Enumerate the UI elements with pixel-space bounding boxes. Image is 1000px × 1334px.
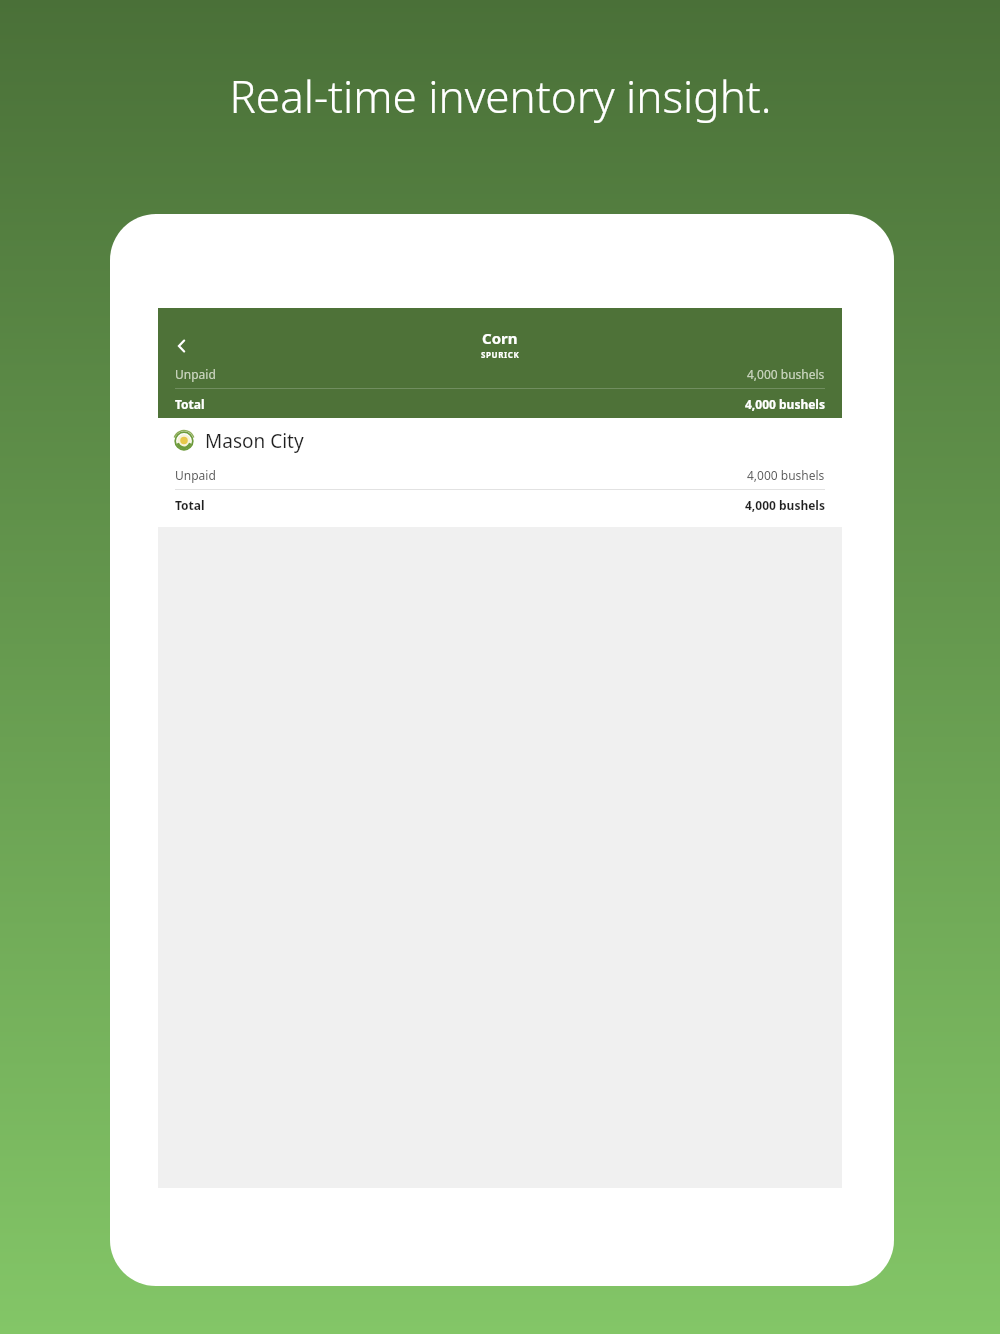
- staticText: 4,000 bushels: [745, 396, 825, 412]
- staticText: Total: [175, 396, 205, 412]
- button[interactable]: Mason City: [158, 418, 842, 527]
- staticText: Unpaid: [175, 366, 216, 382]
- staticText: 4,000 bushels: [747, 366, 825, 382]
- staticText: Mason City: [205, 428, 304, 454]
- staticText: Real-time inventory insight.: [229, 66, 772, 126]
- staticText: Corn: [482, 328, 518, 348]
- staticText: Unpaid: [175, 467, 216, 483]
- staticText: 4,000 bushels: [747, 467, 825, 483]
- button[interactable]: Back: [162, 326, 202, 366]
- staticText: 4,000 bushels: [745, 497, 825, 513]
- staticText: Total: [175, 497, 205, 513]
- staticText: SPURICK: [481, 349, 520, 360]
